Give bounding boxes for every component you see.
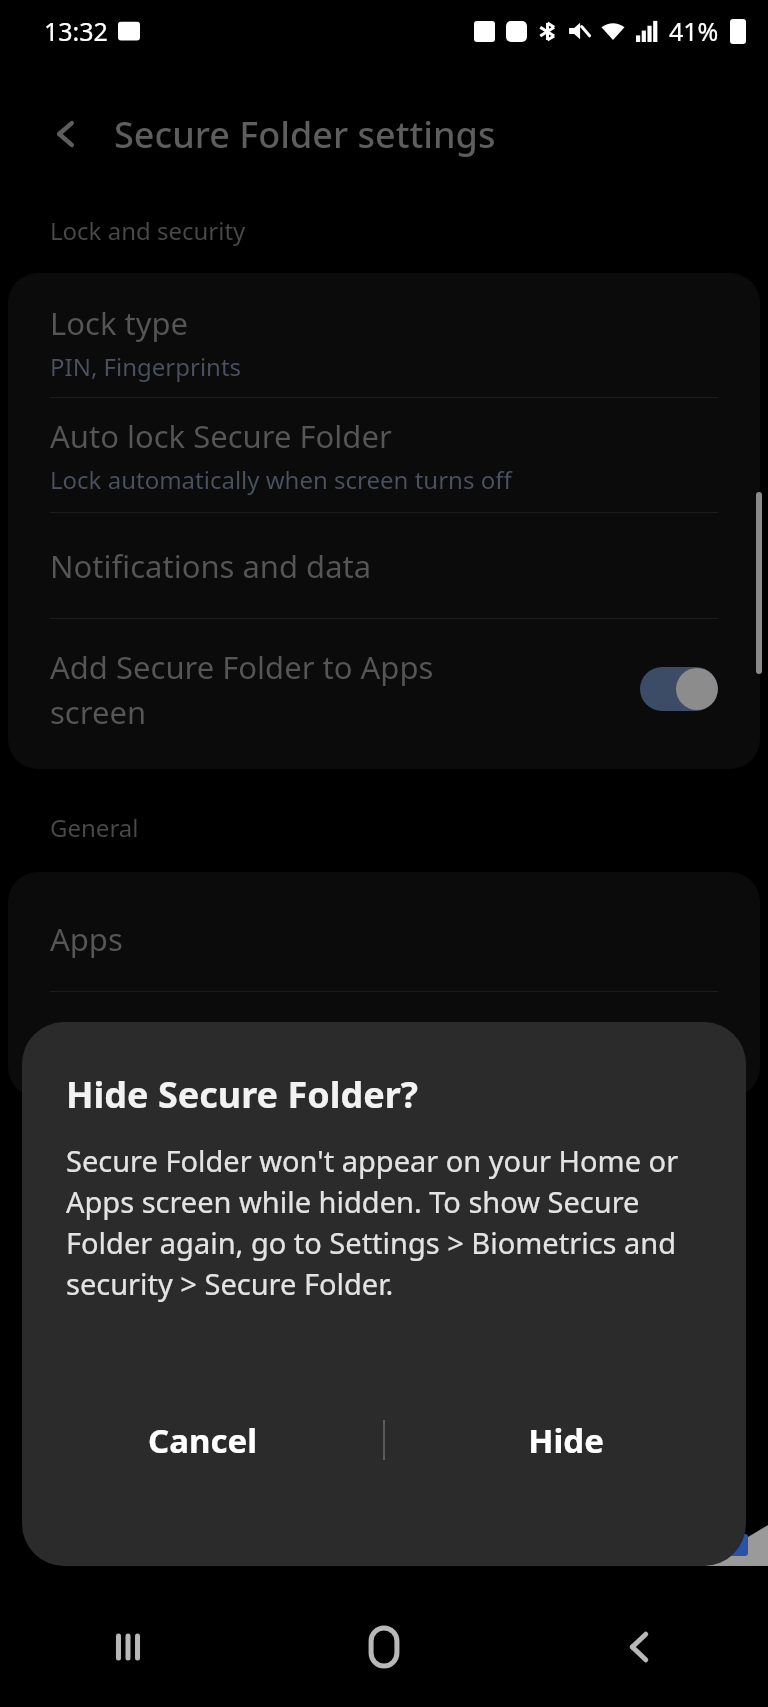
staticText: Cancel (148, 1418, 257, 1463)
button[interactable]: Home (256, 1587, 512, 1707)
staticText: PIN, Fingerprints (50, 350, 242, 383)
button[interactable]: Add Secure Folder to Apps screen toggle (640, 667, 718, 711)
button[interactable]: Back (512, 1587, 768, 1707)
button[interactable]: Recent apps (0, 1587, 256, 1707)
button[interactable]: More services (8, 992, 760, 1097)
staticText: Lock type (50, 302, 189, 344)
button[interactable]: Back (34, 102, 98, 166)
staticText: Hide (528, 1418, 604, 1463)
button[interactable]: Apps (8, 886, 760, 991)
button[interactable]: Notifications and data (8, 513, 760, 618)
staticText: Lock and security (50, 214, 246, 247)
button[interactable]: Add Secure Folder to Apps screen (8, 619, 760, 759)
button[interactable]: Lock type (8, 287, 760, 397)
staticText: 13:32 (44, 14, 108, 48)
button[interactable]: Cancel (22, 1380, 383, 1500)
button[interactable]: Hide (385, 1380, 746, 1500)
staticText: Secure Folder won't appear on your Home … (66, 1141, 702, 1304)
staticText: Add Secure Folder to Apps screen (50, 646, 640, 733)
staticText: 41% (669, 14, 719, 48)
staticText: Hide Secure Folder? (66, 1070, 418, 1119)
staticText: Lock automatically when screen turns off (50, 463, 512, 496)
staticText: General (50, 811, 139, 844)
button[interactable]: Auto lock Secure Folder (8, 398, 760, 512)
staticText: Auto lock Secure Folder (50, 415, 392, 457)
staticText: Apps (50, 918, 123, 960)
staticText: Notifications and data (50, 545, 372, 587)
staticText: Secure Folder settings (114, 110, 496, 159)
